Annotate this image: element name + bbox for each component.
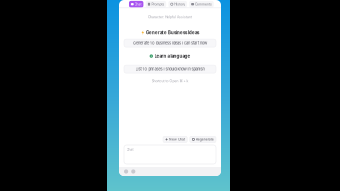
staticText: Chat <box>126 147 133 151</box>
staticText: Generate 10 business ideas I can start n… <box>133 41 207 45</box>
button[interactable]: List 10 phrases I should know in spanish <box>124 65 216 73</box>
staticText: History <box>174 2 185 6</box>
button[interactable]: Chat <box>129 1 143 7</box>
button[interactable]: Regenerate <box>190 136 216 142</box>
staticText: List 10 phrases I should know in spanish <box>135 67 204 71</box>
button[interactable]: New Chat <box>163 136 187 142</box>
staticText: Chat <box>135 2 142 6</box>
staticText: Prompts <box>151 2 164 6</box>
button[interactable]: Settings <box>131 169 135 174</box>
button[interactable]: Comments <box>189 1 214 7</box>
staticText: Regenerate <box>196 137 214 141</box>
staticText: Generate Business Ideas <box>146 30 199 35</box>
button[interactable]: History <box>168 1 187 7</box>
staticText: Character: Helpful Assistant <box>148 15 192 19</box>
staticText: Shortcut to Open ⌘ + k <box>151 79 188 83</box>
button[interactable]: Generate 10 business ideas I can start n… <box>124 39 216 47</box>
button[interactable]: Prompts <box>146 1 166 7</box>
staticText: Comments <box>195 2 212 6</box>
staticText: New Chat <box>169 137 185 141</box>
button[interactable]: Attach file <box>124 169 128 174</box>
staticText: Learn a language <box>154 53 190 59</box>
